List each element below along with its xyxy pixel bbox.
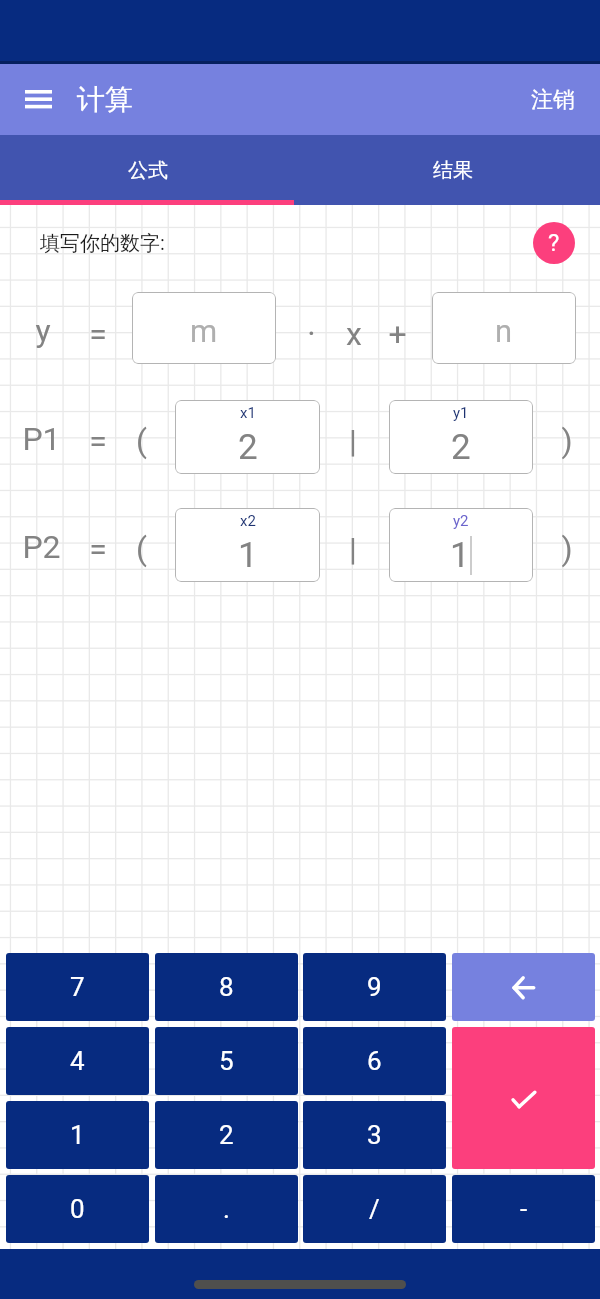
button[interactable]: 公式	[0, 135, 300, 205]
staticText: x	[346, 315, 362, 353]
staticText: -	[520, 1194, 528, 1224]
staticText: 7	[70, 972, 85, 1002]
staticText: =	[89, 315, 107, 353]
button[interactable]: 7	[6, 953, 149, 1021]
button[interactable]: 6	[303, 1027, 446, 1095]
staticText: 9	[367, 972, 382, 1002]
button[interactable]: 结果	[300, 135, 600, 205]
button[interactable]: y2	[389, 508, 533, 582]
button[interactable]: Confirm	[452, 1027, 595, 1169]
staticText: |	[349, 530, 357, 568]
button[interactable]: .	[155, 1175, 298, 1243]
staticText: P1	[22, 420, 61, 458]
button[interactable]: 注销	[506, 64, 600, 135]
staticText: P2	[22, 528, 61, 566]
staticText: |	[349, 422, 357, 460]
staticText: x1	[240, 404, 256, 422]
staticText: 1	[70, 1120, 85, 1150]
staticText: y	[35, 312, 51, 350]
button[interactable]: Backspace	[452, 953, 595, 1021]
staticText: m	[190, 313, 218, 349]
staticText: 1	[238, 535, 258, 576]
staticText: 3	[367, 1120, 382, 1150]
staticText: 2	[219, 1120, 234, 1150]
button[interactable]: 5	[155, 1027, 298, 1095]
button[interactable]: m	[132, 292, 276, 364]
staticText: )	[561, 530, 573, 568]
staticText: ?	[548, 229, 560, 257]
staticText: 5	[219, 1046, 234, 1076]
staticText: =	[89, 422, 107, 460]
staticText: 计算	[77, 82, 133, 117]
button[interactable]: Menu	[10, 71, 66, 128]
staticText: 2	[451, 427, 471, 468]
button[interactable]: Help	[533, 222, 575, 264]
button[interactable]: y1	[389, 400, 533, 474]
staticText: ·	[307, 315, 316, 353]
staticText: 1	[450, 535, 470, 576]
button[interactable]: 4	[6, 1027, 149, 1095]
button[interactable]: 0	[6, 1175, 149, 1243]
staticText: 公式	[128, 158, 168, 183]
staticText: n	[495, 313, 513, 349]
button[interactable]: /	[303, 1175, 446, 1243]
button[interactable]: 8	[155, 953, 298, 1021]
staticText: y2	[453, 512, 469, 530]
staticText: 注销	[531, 86, 575, 114]
staticText: .	[223, 1194, 230, 1224]
staticText: +	[388, 315, 407, 353]
staticText: 填写你的数字:	[40, 231, 165, 256]
button[interactable]: x1	[175, 400, 320, 474]
staticText: 6	[367, 1046, 382, 1076]
staticText: x2	[240, 512, 256, 530]
button[interactable]: 2	[155, 1101, 298, 1169]
button[interactable]: -	[452, 1175, 595, 1243]
staticText: (	[136, 530, 147, 568]
staticText: 0	[70, 1194, 85, 1224]
staticText: 结果	[433, 158, 473, 183]
button[interactable]: 9	[303, 953, 446, 1021]
button[interactable]: 3	[303, 1101, 446, 1169]
button[interactable]: x2	[175, 508, 320, 582]
button[interactable]: n	[432, 292, 576, 364]
staticText: 4	[70, 1046, 85, 1076]
staticText: 8	[219, 972, 234, 1002]
staticText: (	[136, 422, 147, 460]
staticText: /	[369, 1194, 380, 1224]
staticText: y1	[453, 404, 469, 422]
button[interactable]: 1	[6, 1101, 149, 1169]
staticText: 2	[238, 427, 258, 468]
staticText: =	[89, 530, 107, 568]
staticText: )	[561, 422, 573, 460]
